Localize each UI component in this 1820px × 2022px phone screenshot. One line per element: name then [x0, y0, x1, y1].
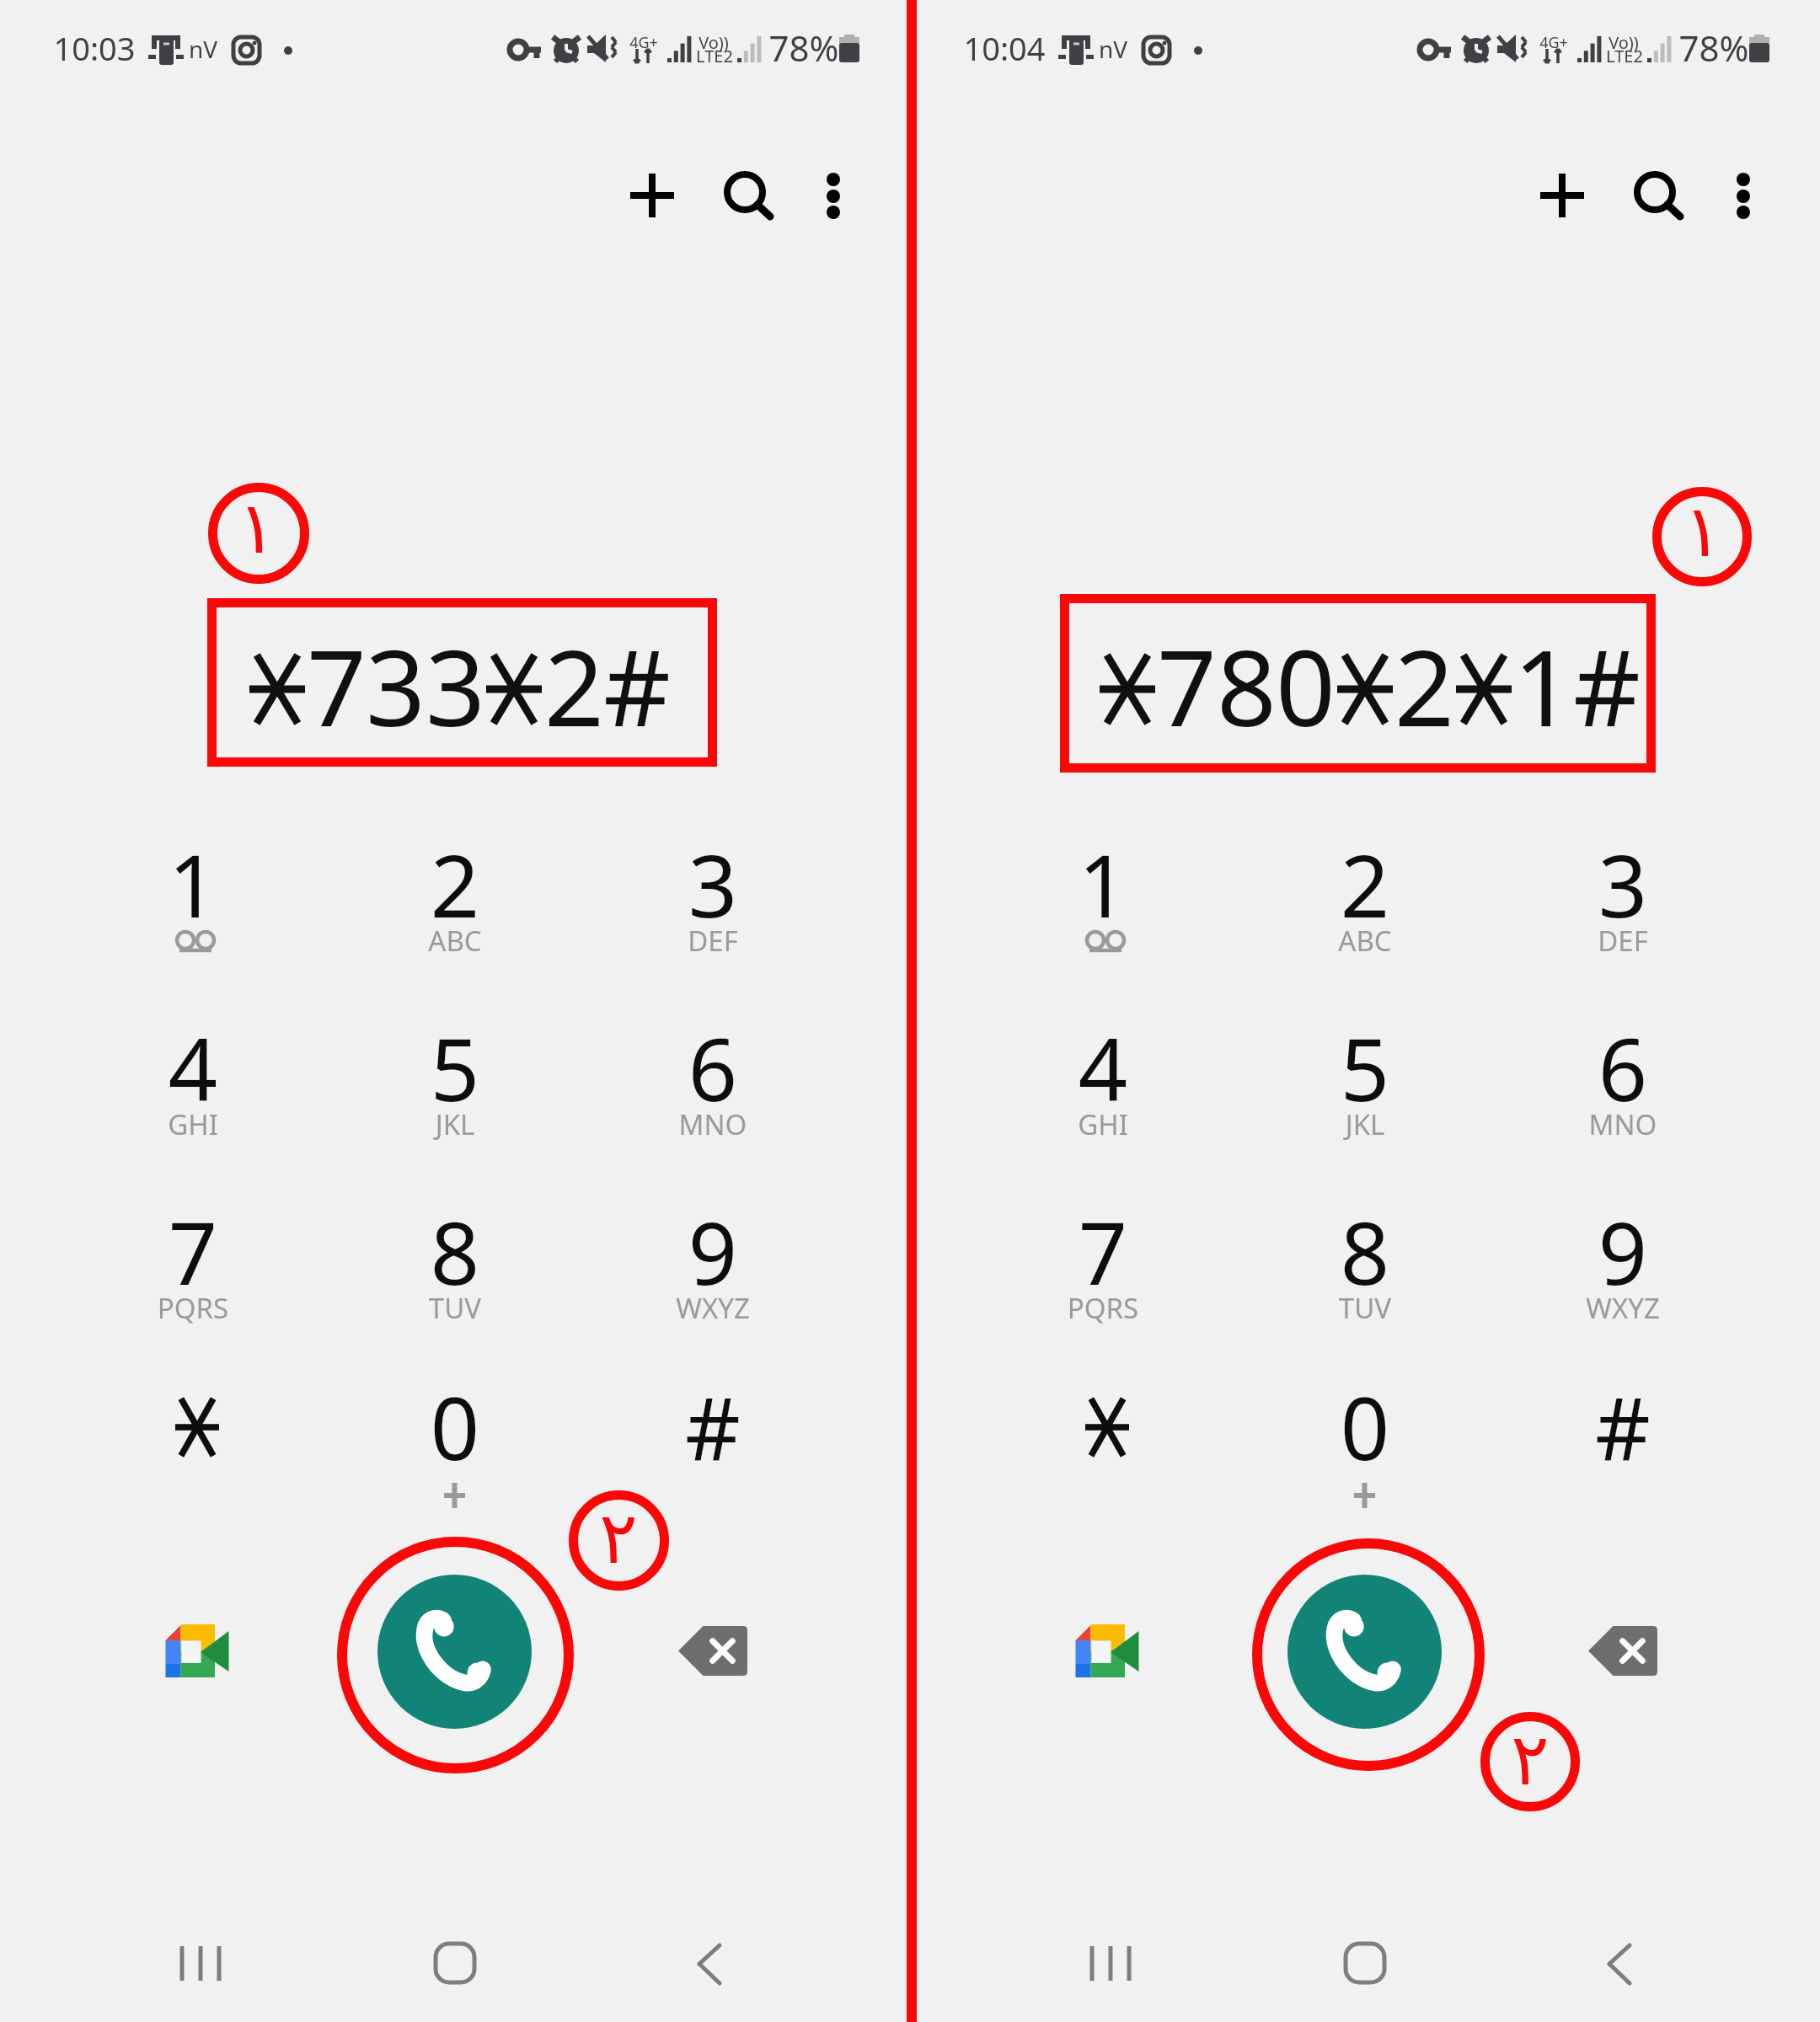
- button[interactable]: Backspace: [1572, 1600, 1673, 1701]
- staticText: JKL: [345, 1105, 565, 1143]
- staticText: ABC: [345, 922, 565, 960]
- button[interactable]: Key 0: [1237, 1365, 1493, 1533]
- button[interactable]: Key 1: [65, 822, 321, 991]
- button[interactable]: Key 9: [1495, 1190, 1751, 1358]
- button[interactable]: Key 2: [1237, 822, 1493, 991]
- staticText: ٢: [599, 1496, 638, 1580]
- staticText: 2: [345, 826, 565, 943]
- button[interactable]: More options: [1693, 145, 1794, 246]
- staticText: 78%: [1646, 24, 1781, 72]
- button[interactable]: Key 3: [1495, 822, 1751, 991]
- button[interactable]: Key 7: [65, 1190, 321, 1358]
- staticText: 3: [603, 826, 822, 943]
- button[interactable]: Key 2: [327, 822, 583, 991]
- button[interactable]: Key 0: [327, 1365, 583, 1533]
- staticText: 6: [1513, 1009, 1732, 1126]
- staticText: PQRS: [83, 1289, 302, 1327]
- staticText: LTE2: [1582, 45, 1667, 67]
- staticText: WXYZ: [1513, 1289, 1732, 1327]
- button[interactable]: Key *: [975, 1365, 1231, 1533]
- staticText: 4G+: [1512, 32, 1596, 53]
- button[interactable]: Recents: [1060, 1913, 1161, 2014]
- button[interactable]: Call: [377, 1575, 532, 1729]
- staticText: ١: [1683, 489, 1722, 573]
- button[interactable]: Key 3: [585, 822, 841, 991]
- button[interactable]: Video call: [1041, 1590, 1175, 1725]
- button[interactable]: Recents: [150, 1913, 251, 2014]
- staticText: WXYZ: [603, 1289, 822, 1327]
- button[interactable]: Key 9: [585, 1190, 841, 1358]
- staticText: 10:03: [2, 26, 187, 70]
- button[interactable]: Key *: [65, 1365, 321, 1533]
- staticText: GHI: [993, 1105, 1212, 1143]
- button[interactable]: Key 5: [327, 1006, 583, 1174]
- staticText: 4: [993, 1009, 1212, 1126]
- button[interactable]: Search: [694, 142, 795, 243]
- staticText: 8: [1217, 614, 1276, 757]
- button[interactable]: Home: [404, 1913, 506, 2014]
- button[interactable]: Call: [1287, 1575, 1442, 1729]
- button[interactable]: Key 8: [327, 1190, 583, 1358]
- staticText: 4: [83, 1009, 302, 1126]
- staticText: 5: [1255, 1009, 1475, 1126]
- staticText: 3: [366, 614, 425, 757]
- staticText: 9: [1513, 1193, 1732, 1310]
- button[interactable]: Add contact: [602, 145, 703, 246]
- staticText: 2: [1255, 826, 1475, 943]
- staticText: Vo)): [1582, 31, 1666, 54]
- button[interactable]: Home: [1314, 1913, 1416, 2014]
- staticText: 8: [345, 1193, 565, 1310]
- staticText: 0: [1276, 614, 1335, 757]
- staticText: 7: [307, 614, 366, 757]
- button[interactable]: Add contact: [1512, 145, 1613, 246]
- staticText: 4G+: [602, 32, 686, 53]
- staticText: 7: [993, 1193, 1212, 1310]
- button[interactable]: Back: [1570, 1913, 1671, 2014]
- button[interactable]: Key 8: [1237, 1190, 1493, 1358]
- staticText: 78%: [736, 24, 871, 72]
- staticText: 0: [345, 1368, 565, 1485]
- button[interactable]: Key #: [1495, 1365, 1751, 1533]
- staticText: MNO: [1513, 1105, 1732, 1143]
- button[interactable]: Key 6: [585, 1006, 841, 1174]
- staticText: 10:04: [912, 26, 1097, 70]
- button[interactable]: Backspace: [662, 1600, 763, 1701]
- staticText: nV: [153, 33, 254, 65]
- staticText: 1: [993, 826, 1212, 943]
- button[interactable]: More options: [783, 145, 884, 246]
- button[interactable]: Key 4: [975, 1006, 1231, 1174]
- staticText: TUV: [1255, 1289, 1475, 1327]
- staticText: 1: [1513, 614, 1572, 757]
- button[interactable]: Search: [1604, 142, 1705, 243]
- staticText: 3: [1513, 826, 1732, 943]
- staticText: MNO: [603, 1105, 822, 1143]
- staticText: #: [603, 1368, 822, 1485]
- staticText: JKL: [1255, 1105, 1475, 1143]
- staticText: LTE2: [672, 45, 757, 67]
- button[interactable]: Key 4: [65, 1006, 321, 1174]
- button[interactable]: Key 5: [1237, 1006, 1493, 1174]
- staticText: 7: [1157, 614, 1216, 757]
- staticText: GHI: [83, 1105, 302, 1143]
- staticText: TUV: [345, 1289, 565, 1327]
- button[interactable]: Key 1: [975, 822, 1231, 991]
- staticText: ABC: [1255, 922, 1475, 960]
- button[interactable]: Back: [660, 1913, 761, 2014]
- staticText: PQRS: [993, 1289, 1212, 1327]
- staticText: Vo)): [672, 31, 756, 54]
- button[interactable]: Key #: [585, 1365, 841, 1533]
- staticText: #: [1573, 614, 1632, 757]
- staticText: 6: [603, 1009, 822, 1126]
- staticText: 0: [1255, 1368, 1475, 1485]
- staticText: ٢: [1511, 1718, 1550, 1801]
- button[interactable]: Video call: [131, 1590, 265, 1725]
- staticText: 1: [83, 826, 302, 943]
- button[interactable]: Key 7: [975, 1190, 1231, 1358]
- staticText: DEF: [1513, 922, 1732, 960]
- staticText: 5: [345, 1009, 565, 1126]
- staticText: 9: [603, 1193, 822, 1310]
- button[interactable]: Key 6: [1495, 1006, 1751, 1174]
- staticText: #: [1513, 1368, 1732, 1485]
- staticText: DEF: [603, 922, 822, 960]
- staticText: ١: [238, 486, 276, 570]
